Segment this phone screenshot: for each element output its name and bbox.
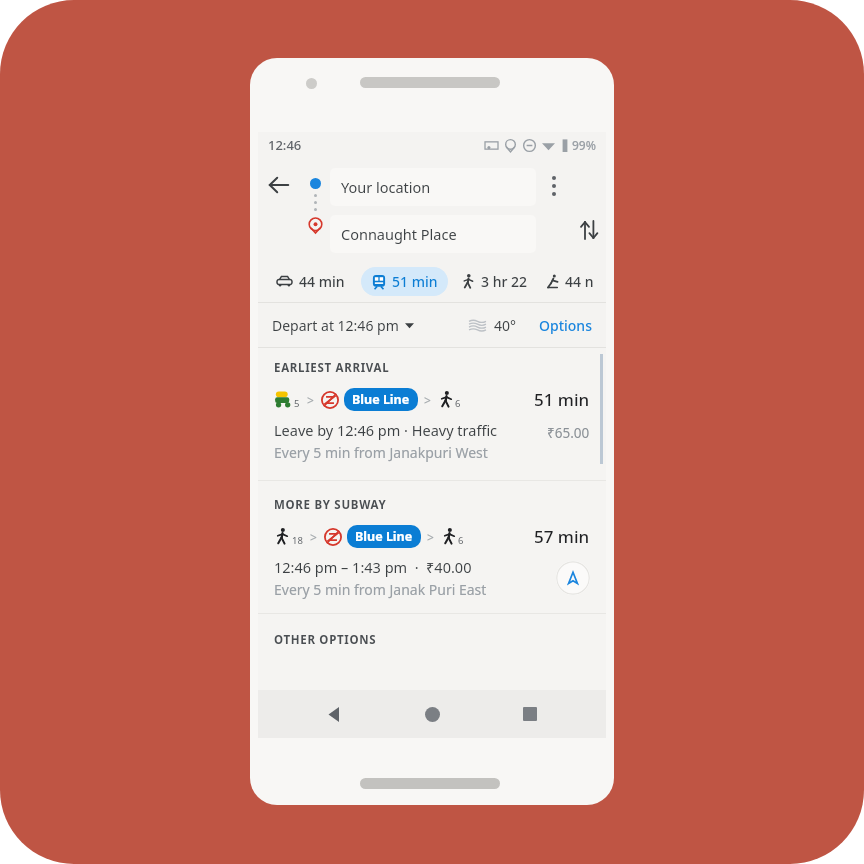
button[interactable]: Connaught Place [330, 215, 536, 253]
staticText: Every 5 min from Janakpuri West [274, 443, 488, 462]
staticText: Blue Line [352, 391, 410, 408]
button[interactable]: Recent apps [508, 692, 552, 736]
staticText: Options [539, 316, 592, 335]
button[interactable]: Swap start and destination [572, 158, 606, 260]
staticText: 6 [455, 397, 461, 410]
button[interactable]: Home [410, 692, 454, 736]
staticText: 44 n [565, 272, 594, 291]
staticText: Every 5 min from Janak Puri East [274, 580, 487, 599]
staticText: > [427, 529, 434, 545]
staticText: 40° [494, 316, 517, 335]
button[interactable]: 44 n [541, 267, 598, 296]
staticText: 44 min [299, 272, 345, 291]
staticText: 12:46 [268, 136, 302, 154]
staticText: 57 min [534, 525, 590, 548]
staticText: ₹65.00 [547, 424, 590, 442]
staticText: 51 min [534, 388, 590, 411]
staticText: > [424, 392, 431, 408]
button[interactable]: 51 min [361, 267, 448, 296]
staticText: Depart at 12:46 pm [272, 316, 399, 335]
staticText: 18 [292, 534, 303, 547]
button[interactable]: Options [539, 316, 592, 335]
staticText: EARLIEST ARRIVAL [274, 360, 390, 376]
button[interactable]: Back [312, 692, 356, 736]
staticText: Connaught Place [341, 224, 457, 244]
button[interactable]: 5 [258, 380, 606, 462]
staticText: 5 [294, 397, 300, 410]
staticText: MORE BY SUBWAY [274, 497, 387, 513]
staticText: 12:46 pm – 1:43 pm · ₹40.00 [274, 557, 472, 577]
staticText: > [307, 392, 314, 408]
button[interactable]: 3 hr 22 [456, 267, 533, 296]
button[interactable]: Your location [330, 168, 536, 206]
button[interactable]: Start navigation [556, 561, 590, 595]
staticText: OTHER OPTIONS [274, 632, 377, 648]
button[interactable]: 18 [258, 517, 606, 599]
staticText: Your location [341, 177, 431, 197]
staticText: > [310, 529, 317, 545]
button[interactable]: More options [536, 158, 572, 260]
staticText: Leave by 12:46 pm · Heavy traffic [274, 420, 498, 440]
staticText: 3 hr 22 [481, 272, 528, 291]
staticText: 99% [572, 137, 596, 153]
staticText: 51 min [392, 272, 438, 291]
staticText: Blue Line [355, 528, 413, 545]
button[interactable]: Back [258, 158, 300, 260]
button[interactable]: 44 min [270, 267, 351, 296]
button[interactable]: Depart at 12:46 pm [272, 316, 414, 335]
staticText: 6 [458, 534, 464, 547]
